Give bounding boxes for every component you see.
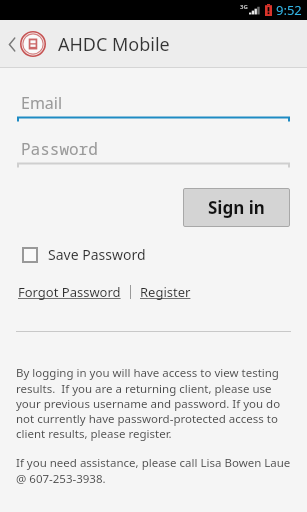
staticText: 9:52 (276, 1, 302, 19)
staticText: Register (140, 283, 191, 301)
staticText: Save Password (48, 245, 146, 264)
staticText: If you need assistance, please call Lisa… (16, 455, 291, 486)
button[interactable]: Navigate up (0, 25, 50, 63)
staticText: Email (21, 92, 63, 114)
staticText: AHDC Mobile (58, 32, 170, 57)
button[interactable]: Email (17, 90, 290, 122)
button[interactable]: Save Password (14, 241, 156, 268)
staticText: 3G (240, 3, 248, 11)
staticText: Sign in (208, 196, 265, 219)
staticText: Password (21, 138, 98, 160)
button[interactable]: Register (140, 280, 191, 304)
button[interactable]: Sign in (183, 188, 290, 227)
button[interactable]: Forgot Password (18, 280, 121, 304)
staticText: Forgot Password (18, 283, 121, 301)
staticText: By logging in you will have access to vi… (16, 365, 291, 441)
button[interactable]: Password (17, 136, 290, 168)
